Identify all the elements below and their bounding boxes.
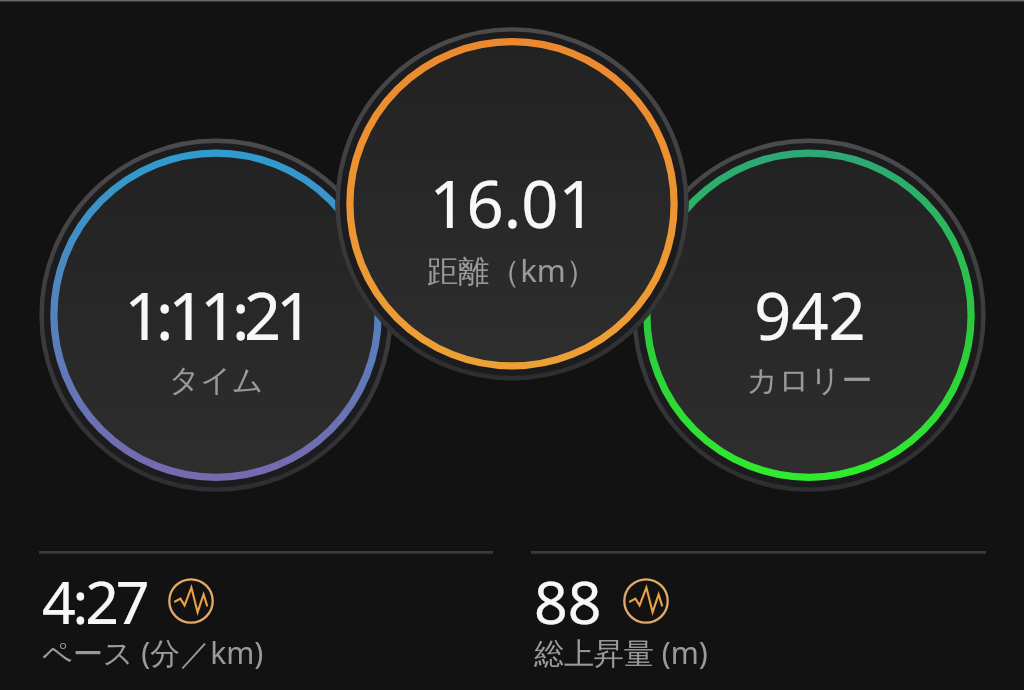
button[interactable]: 1:11:21 [46, 271, 386, 401]
staticText: 距離（km） [427, 249, 597, 289]
staticText: 16.01 [429, 159, 596, 248]
button[interactable]: 88 [534, 561, 994, 676]
staticText: 1:11:21 [124, 271, 308, 360]
button[interactable]: 4:27 [42, 561, 502, 676]
staticText: 88 [534, 561, 602, 641]
other: Graph [168, 578, 214, 624]
staticText: ペース (分／km) [42, 632, 264, 673]
staticText: タイム [168, 361, 264, 400]
button[interactable]: 16.01 [342, 159, 682, 289]
staticText: 942 [754, 271, 866, 360]
staticText: カロリー [746, 361, 873, 400]
staticText: 総上昇量 (m) [534, 632, 708, 673]
button[interactable]: 942 [639, 271, 979, 401]
staticText: 4:27 [42, 561, 147, 641]
other: Graph [623, 578, 669, 624]
